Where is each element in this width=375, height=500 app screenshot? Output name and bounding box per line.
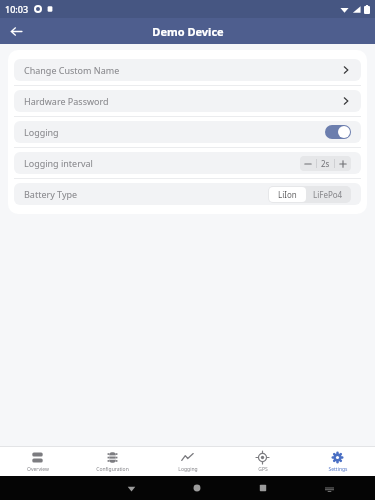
button[interactable]: LiFePo4: [306, 187, 350, 202]
button[interactable]: Settings: [300, 447, 375, 476]
staticText: Configuration: [96, 466, 129, 473]
button[interactable]: Decrease interval: [300, 156, 316, 171]
button[interactable]: LiIon: [269, 187, 306, 202]
button[interactable]: Logging: [150, 447, 225, 476]
button[interactable]: Change Custom Name: [14, 59, 361, 81]
staticText: GPS: [258, 466, 268, 473]
staticText: 10:03: [5, 3, 29, 15]
button[interactable]: Configuration: [75, 447, 150, 476]
button[interactable]: Home: [164, 484, 230, 492]
staticText: Logging interval: [24, 157, 300, 169]
staticText: LiIon: [278, 189, 297, 200]
button[interactable]: Back: [4, 19, 28, 43]
button[interactable]: Back: [98, 484, 164, 493]
button[interactable]: Keyboard: [296, 485, 362, 492]
staticText: Logging: [178, 466, 198, 473]
staticText: Overview: [27, 466, 49, 473]
staticText: Settings: [328, 466, 348, 473]
staticText: 2s: [321, 158, 330, 169]
button[interactable]: Increase interval: [335, 156, 351, 171]
staticText: Hardware Password: [24, 95, 341, 107]
button[interactable]: Overview: [0, 447, 75, 476]
button[interactable]: Logging toggle: [325, 125, 351, 139]
button[interactable]: Recents: [230, 484, 296, 492]
button[interactable]: Hardware Password: [14, 90, 361, 112]
staticText: Logging: [24, 126, 325, 138]
button[interactable]: GPS: [225, 447, 300, 476]
staticText: Demo Device: [152, 24, 224, 39]
staticText: Battery Type: [24, 188, 268, 200]
staticText: LiFePo4: [313, 189, 343, 200]
staticText: Change Custom Name: [24, 64, 341, 76]
